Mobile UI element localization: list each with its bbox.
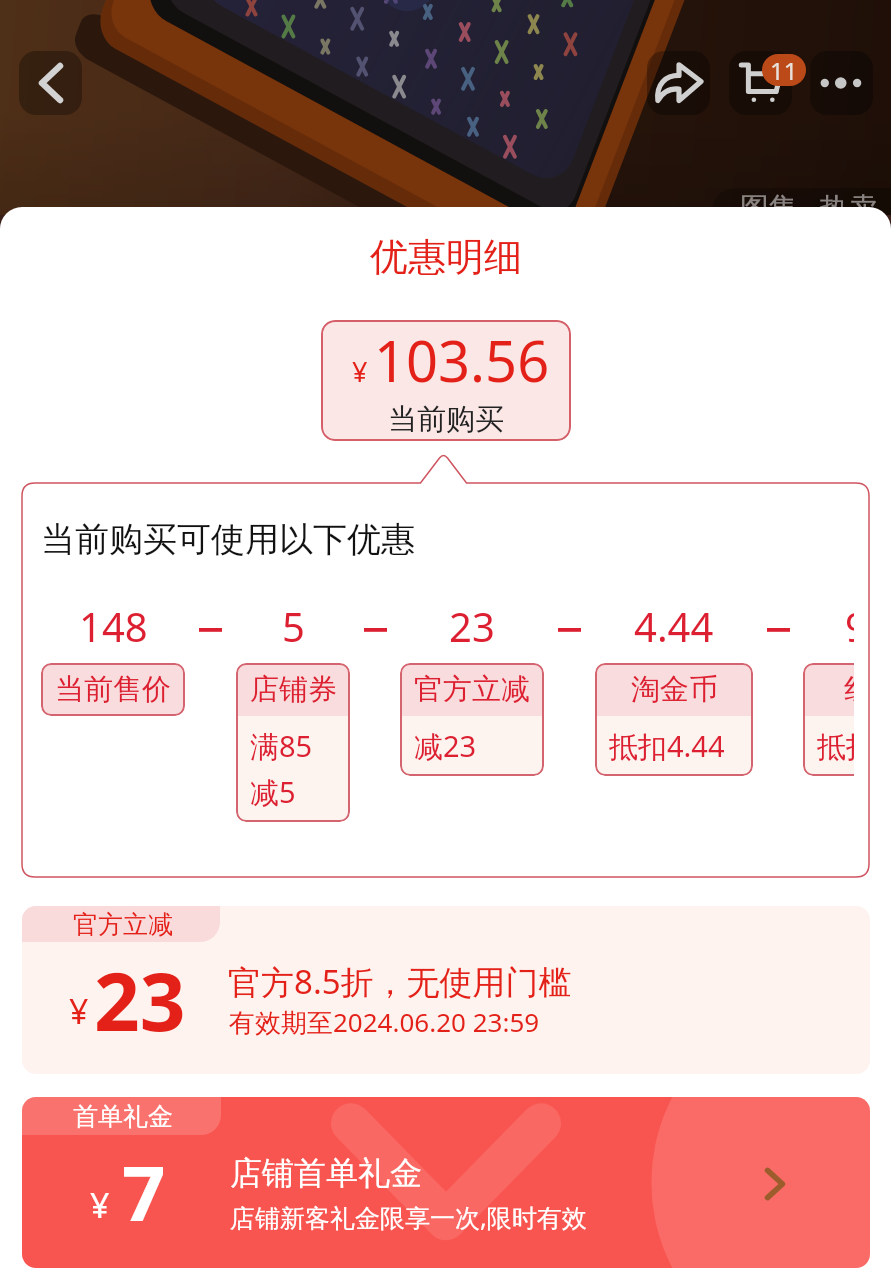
- button[interactable]: Back: [19, 51, 82, 115]
- staticText: 9.2: [845, 599, 854, 653]
- staticText: 首单礼金: [73, 1101, 173, 1132]
- button[interactable]: 当前售价: [41, 663, 185, 716]
- staticText: 减23: [414, 726, 477, 766]
- staticText: 官方立减: [414, 671, 530, 708]
- staticText: 抵扣4.44: [609, 726, 725, 766]
- staticText: ¥: [352, 353, 368, 390]
- staticText: 店铺新客礼金限享一次,限时有效: [230, 1200, 587, 1234]
- staticText: 优惠明细: [370, 233, 522, 281]
- staticText: 148: [79, 599, 148, 653]
- button[interactable]: Shopping cart: [729, 51, 792, 115]
- staticText: 店铺首单礼金: [230, 1153, 422, 1193]
- staticText: 23: [94, 945, 186, 1054]
- staticText: 抵扣9.2: [817, 726, 854, 766]
- staticText: 11: [770, 54, 798, 86]
- staticText: 淘金币: [631, 671, 718, 708]
- button[interactable]: 官方立减: [22, 906, 870, 1074]
- button[interactable]: 淘金币: [595, 663, 753, 776]
- staticText: 官方8.5折，无使用门槛: [228, 959, 572, 1004]
- staticText: 满85: [250, 726, 313, 766]
- staticText: 5: [282, 599, 305, 653]
- button[interactable]: 首单礼金: [22, 1097, 870, 1268]
- staticText: 103.56: [374, 322, 550, 398]
- staticText: 官方立减: [73, 909, 173, 940]
- button[interactable]: 官方立减: [400, 663, 544, 776]
- staticText: 当前购买: [388, 401, 504, 438]
- staticText: 4.44: [634, 599, 714, 653]
- staticText: 23: [449, 599, 495, 653]
- staticText: 热卖: [820, 190, 878, 227]
- staticText: ¥: [90, 1182, 110, 1228]
- staticText: ¥: [69, 988, 89, 1034]
- button[interactable]: 店铺券: [236, 663, 350, 822]
- staticText: 当前购买可使用以下优惠: [41, 518, 415, 561]
- staticText: 图集: [740, 190, 798, 227]
- staticText: 有效期至2024.06.20 23:59: [229, 1004, 540, 1040]
- staticText: 红包: [844, 671, 854, 708]
- staticText: 店铺券: [250, 671, 337, 708]
- staticText: 减5: [250, 772, 296, 812]
- staticText: 7: [122, 1140, 166, 1244]
- button[interactable]: 红包: [803, 663, 854, 776]
- button[interactable]: Share: [647, 51, 710, 115]
- button[interactable]: More options: [810, 51, 873, 115]
- staticText: 当前售价: [55, 671, 171, 708]
